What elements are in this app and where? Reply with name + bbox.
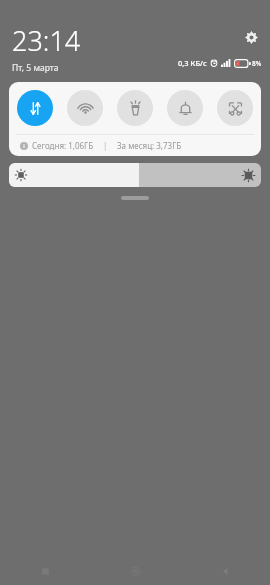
staticText: Пт, 5 марта xyxy=(12,62,59,74)
button[interactable]: Brightness xyxy=(9,163,261,187)
staticText: | xyxy=(103,140,108,151)
staticText: Сегодня: 1,06ГБ xyxy=(32,140,94,151)
button[interactable]: Expand xyxy=(121,196,149,200)
button[interactable]: Settings xyxy=(241,27,261,47)
button[interactable]: Wi-Fi xyxy=(67,90,103,126)
staticText: 0,3 КБ/с xyxy=(178,58,207,68)
staticText: За месяц: 3,73ГБ xyxy=(117,140,182,151)
staticText: 23:14 xyxy=(12,22,81,59)
button[interactable]: Сегодня: 1,06ГБ xyxy=(9,135,261,156)
button[interactable]: Flashlight xyxy=(117,90,153,126)
button[interactable]: Ringer xyxy=(167,90,203,126)
staticText: 8% xyxy=(252,59,262,68)
button[interactable]: Screenshot xyxy=(217,90,253,126)
button[interactable]: Mobile data xyxy=(17,90,53,126)
